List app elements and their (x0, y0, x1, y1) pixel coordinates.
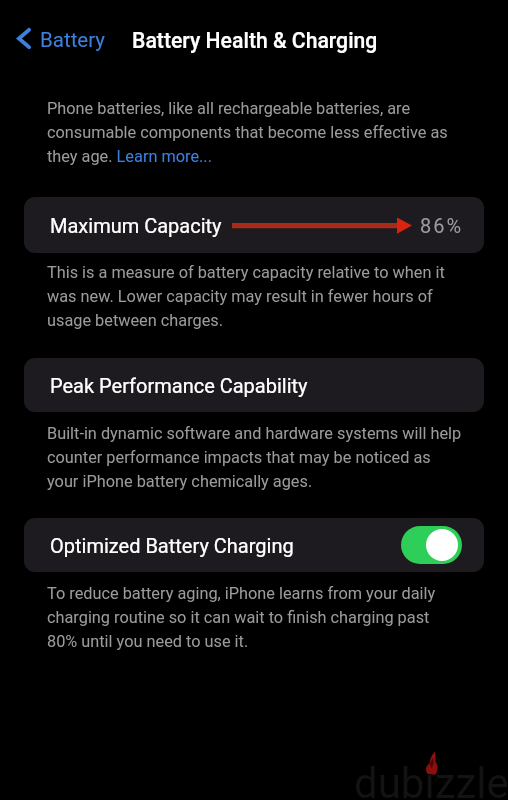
button[interactable]: Peak Performance Capability (24, 358, 484, 412)
staticText: Maximum Capacity (50, 214, 222, 237)
staticText: 86% (420, 214, 464, 237)
staticText: This is a measure of battery capacity re… (47, 263, 462, 330)
staticText: Built-in dynamic software and hardware s… (47, 424, 462, 491)
button[interactable]: Optimized Battery Charging (24, 518, 484, 572)
staticText: Peak Performance Capability (50, 374, 308, 397)
button[interactable]: Battery (14, 21, 110, 57)
button[interactable]: Optimized Battery Charging (401, 526, 462, 564)
staticText: Battery (40, 28, 106, 52)
staticText: Battery Health & Charging (132, 28, 378, 53)
button[interactable]: Maximum Capacity (24, 197, 484, 253)
staticText: dubizzle (354, 759, 508, 800)
staticText: Phone batteries, like all rechargeable b… (47, 99, 462, 166)
staticText: Optimized Battery Charging (50, 534, 294, 557)
staticText: To reduce battery aging, iPhone learns f… (47, 584, 462, 651)
